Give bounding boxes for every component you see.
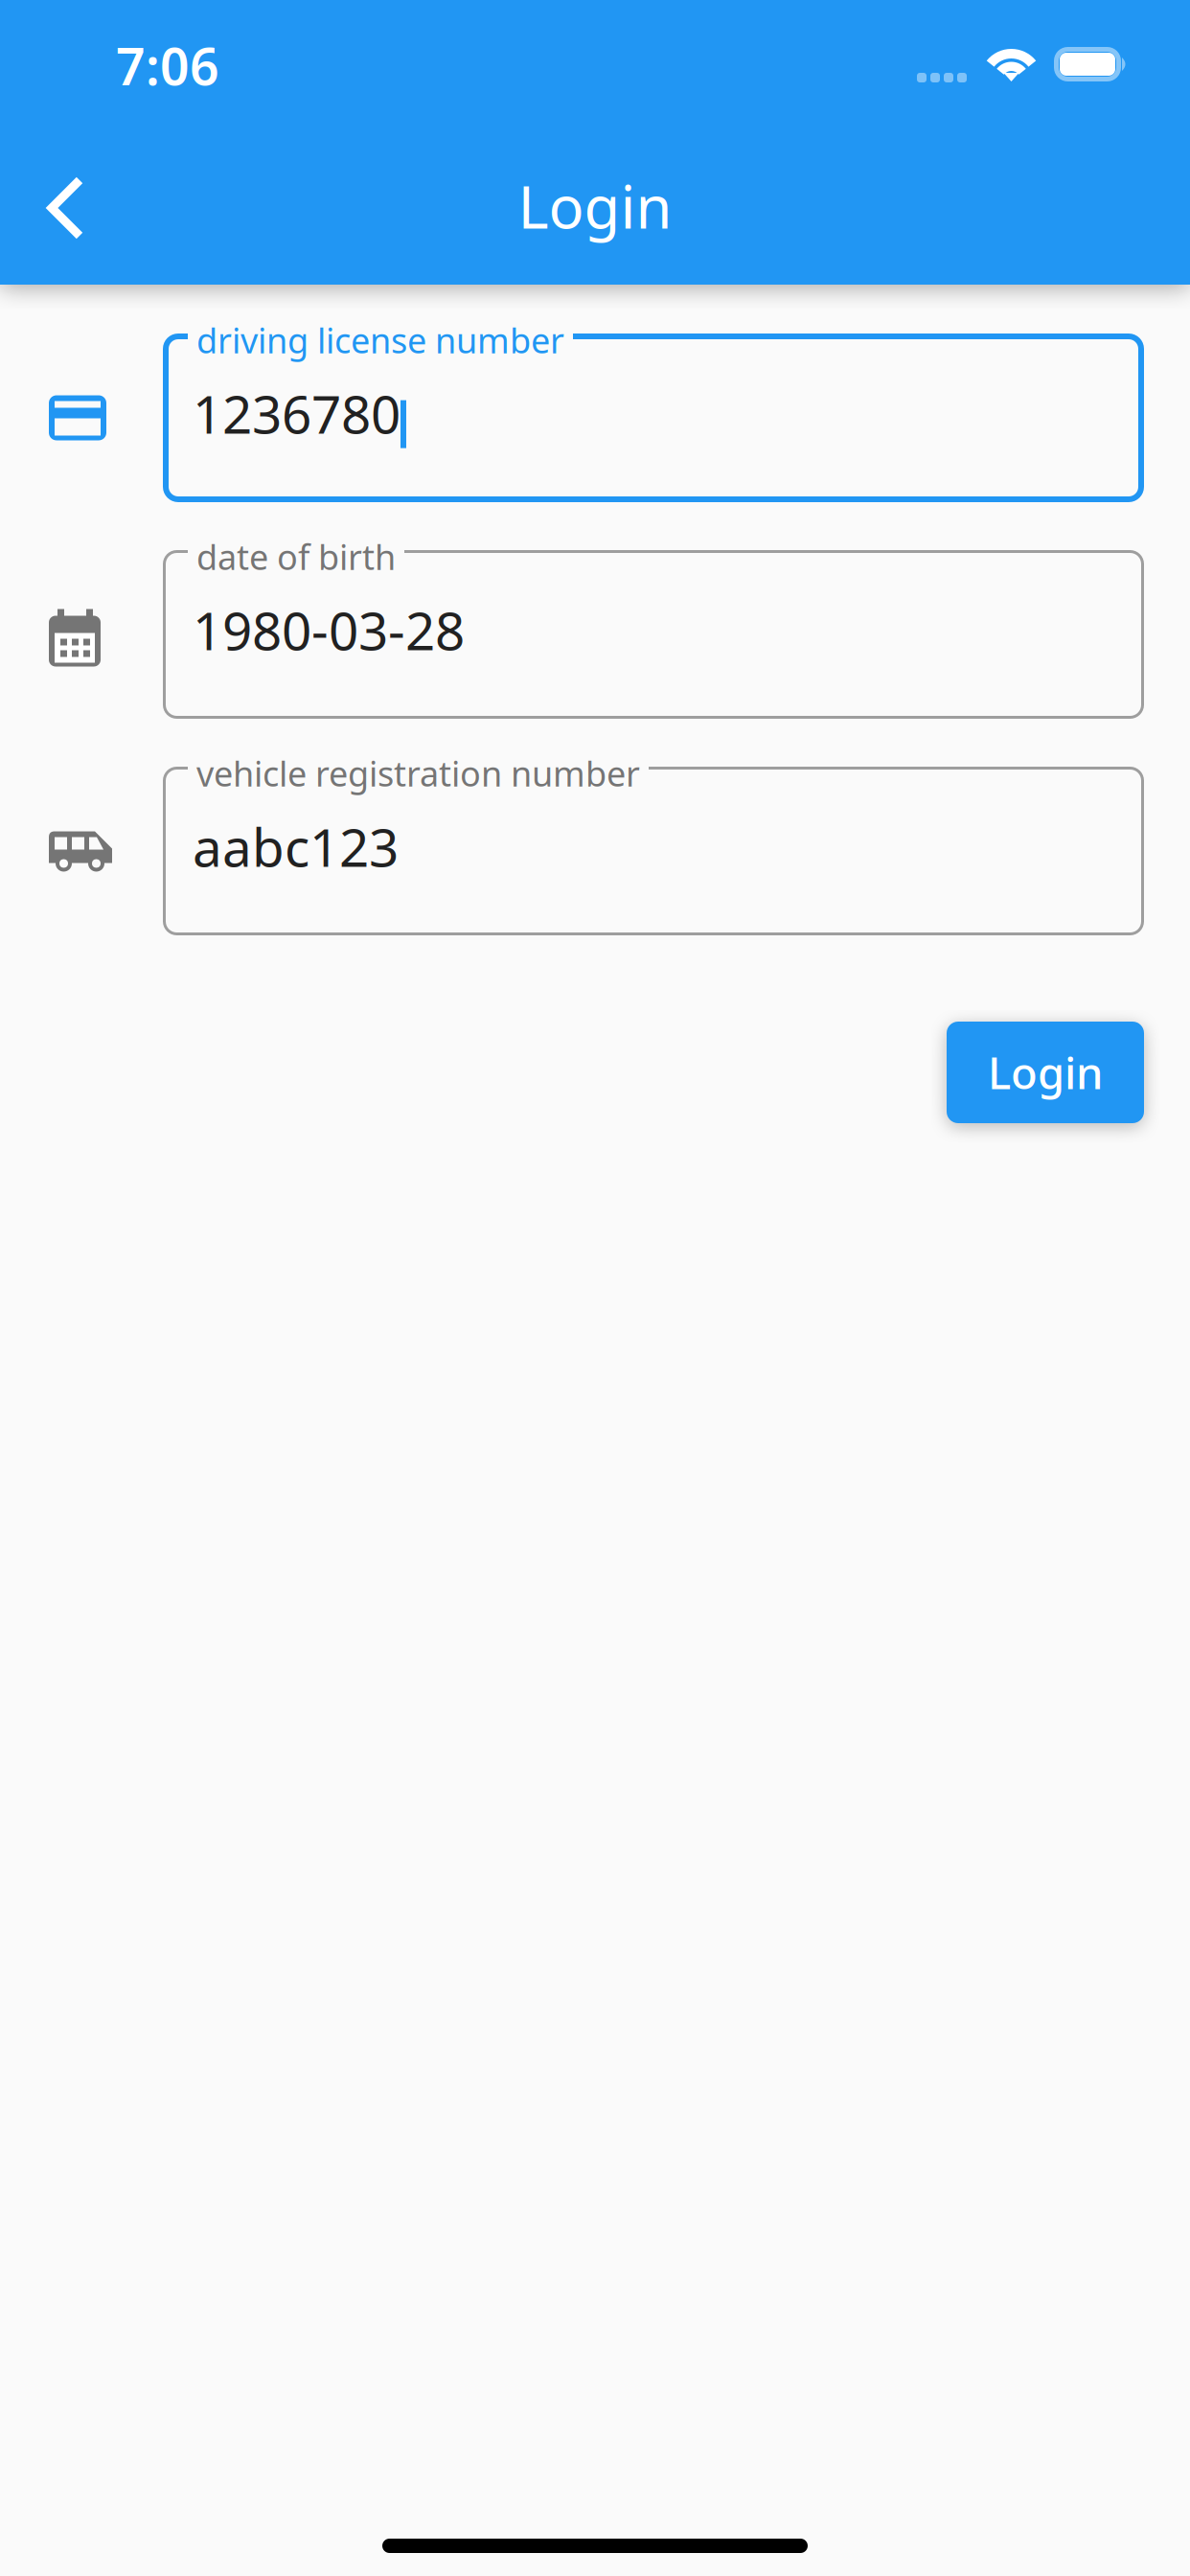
button[interactable]: aabc123 <box>0 767 1190 935</box>
staticText: driving license number <box>196 317 564 363</box>
button[interactable]: Login <box>947 1022 1144 1123</box>
button[interactable]: 1980-03-28 <box>0 550 1190 719</box>
staticText: date of birth <box>196 534 396 580</box>
staticText: Login <box>988 1044 1103 1101</box>
button[interactable]: Back <box>0 126 134 245</box>
staticText: 1236780 <box>193 379 400 448</box>
staticText: 7:06 <box>116 32 219 99</box>
staticText: Login <box>518 167 672 245</box>
staticText: vehicle registration number <box>196 750 640 796</box>
staticText: 1980-03-28 <box>193 595 465 665</box>
staticText: aabc123 <box>193 812 399 881</box>
button[interactable]: 1236780 <box>0 333 1190 502</box>
